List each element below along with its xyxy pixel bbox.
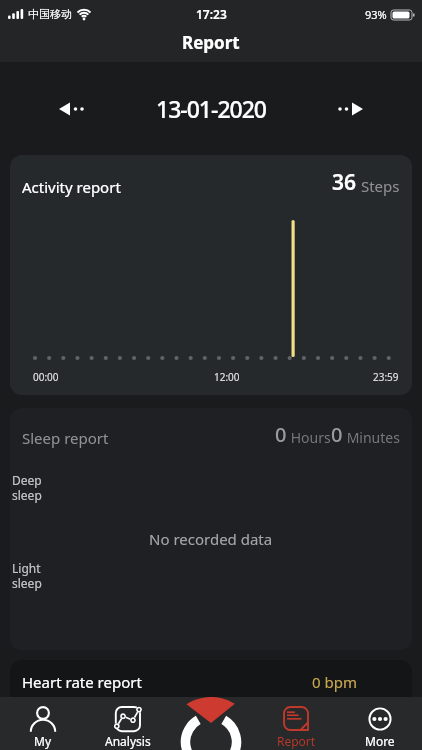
staticText: Steps: [357, 176, 400, 196]
staticText: 17:23: [196, 6, 227, 22]
staticText: 36: [332, 168, 357, 197]
staticText: 00:00: [33, 370, 59, 384]
button[interactable]: More: [338, 697, 422, 750]
staticText: 12:00: [214, 370, 240, 384]
button[interactable]: [52, 94, 92, 124]
staticText: Deep sleep: [12, 472, 42, 503]
staticText: Hours: [287, 428, 331, 447]
staticText: More: [365, 733, 395, 749]
staticText: Analysis: [105, 733, 151, 749]
button[interactable]: Sleep report: [10, 408, 412, 650]
button[interactable]: Analysis: [85, 697, 170, 750]
button[interactable]: Activity report: [10, 155, 412, 395]
staticText: Report: [182, 31, 240, 54]
button[interactable]: Report: [254, 697, 338, 750]
staticText: 13-01-2020: [156, 93, 267, 124]
staticText: No recorded data: [149, 529, 273, 549]
button[interactable]: [330, 94, 370, 124]
staticText: Minutes: [343, 428, 400, 447]
button[interactable]: My: [0, 697, 85, 750]
staticText: 0: [331, 421, 343, 448]
staticText: 0 bpm: [312, 672, 357, 692]
staticText: 93%: [365, 7, 387, 22]
staticText: 0: [275, 421, 287, 448]
staticText: 23:59: [373, 370, 399, 384]
staticText: Light sleep: [12, 560, 42, 591]
button[interactable]: Heart rate report: [10, 660, 412, 750]
staticText: 中国移动: [28, 7, 72, 21]
staticText: Sleep report: [22, 428, 109, 448]
staticText: My: [34, 733, 52, 749]
staticText: Report: [277, 733, 316, 749]
staticText: Activity report: [22, 177, 121, 197]
button[interactable]: [170, 697, 254, 750]
staticText: Heart rate report: [22, 672, 142, 692]
